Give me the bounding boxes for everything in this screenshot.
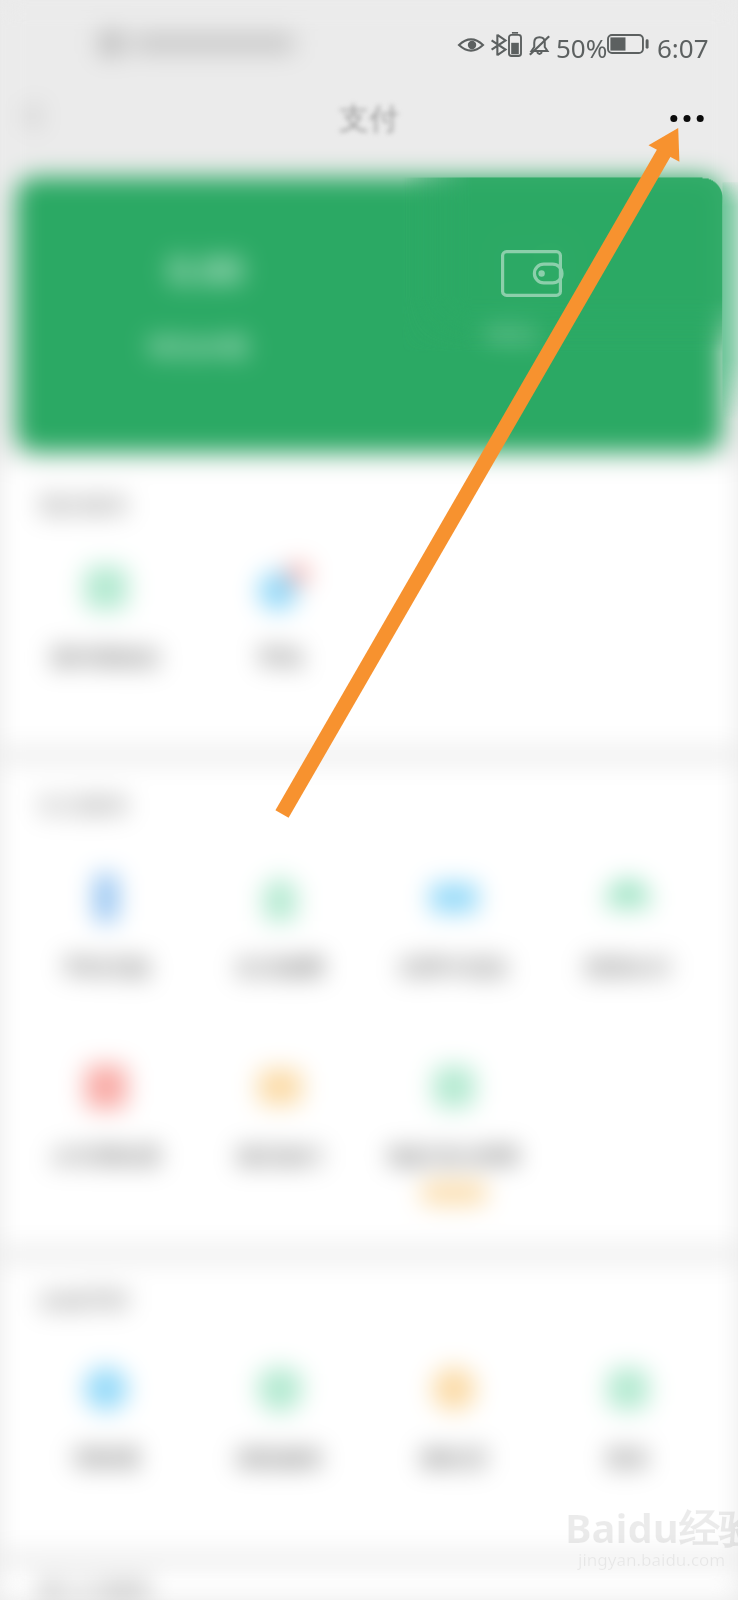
button[interactable]: 面对面收款 xyxy=(19,548,193,676)
staticText: jingyan.baidu.com xyxy=(578,1548,726,1571)
staticText: 我的服务 xyxy=(38,491,130,520)
button[interactable]: 微粒贷 xyxy=(367,1349,541,1477)
staticText: 微粒贷 xyxy=(421,1445,487,1473)
staticText: 6:07 xyxy=(657,30,709,65)
staticText: 生活缴费 xyxy=(236,954,324,982)
button[interactable]: More options xyxy=(654,94,720,144)
staticText: 酒店旅行 xyxy=(236,1143,324,1171)
button[interactable]: 电影演出赛事 xyxy=(367,1047,541,1175)
staticText: 面对面收款 xyxy=(51,644,161,672)
staticText: 生活服务 xyxy=(38,791,130,820)
staticText: 钱包 xyxy=(486,313,536,344)
button[interactable]: 滴滴出行 xyxy=(541,858,715,986)
staticText: 手机充值 xyxy=(62,954,150,982)
button[interactable]: 生活缴费 xyxy=(193,858,367,986)
button[interactable]: 0.00 xyxy=(16,177,722,452)
staticText: 信用卡还款 xyxy=(399,954,509,982)
staticText: 零钱 xyxy=(258,644,302,672)
staticText: 滴滴出行 xyxy=(584,954,672,982)
staticText: 金融理财 xyxy=(38,1286,130,1315)
staticText: Baidu经验 xyxy=(565,1500,738,1555)
button[interactable]: 火车票机票 xyxy=(19,1047,193,1175)
staticText: 火车票机票 xyxy=(51,1143,161,1171)
staticText: 0.00 xyxy=(168,243,244,295)
staticText: 50% xyxy=(556,30,608,65)
button[interactable]: 保险服务 xyxy=(193,1349,367,1477)
staticText: 理财通 xyxy=(73,1445,139,1473)
staticText: 更多 xyxy=(606,1445,650,1473)
staticText: 第三方服务 xyxy=(38,1575,153,1600)
button[interactable]: 理财通 xyxy=(19,1349,193,1477)
staticText: 电影演出赛事 xyxy=(388,1143,520,1171)
staticText: 钱包余额 xyxy=(148,331,248,362)
button[interactable]: 手机充值 xyxy=(19,858,193,986)
button[interactable]: 酒店旅行 xyxy=(193,1047,367,1175)
button[interactable]: 零钱 xyxy=(193,548,367,676)
button[interactable]: 更多 xyxy=(541,1349,715,1477)
staticText: 支付 xyxy=(339,100,399,138)
staticText: 保险服务 xyxy=(236,1445,324,1473)
button[interactable]: 信用卡还款 xyxy=(367,858,541,986)
